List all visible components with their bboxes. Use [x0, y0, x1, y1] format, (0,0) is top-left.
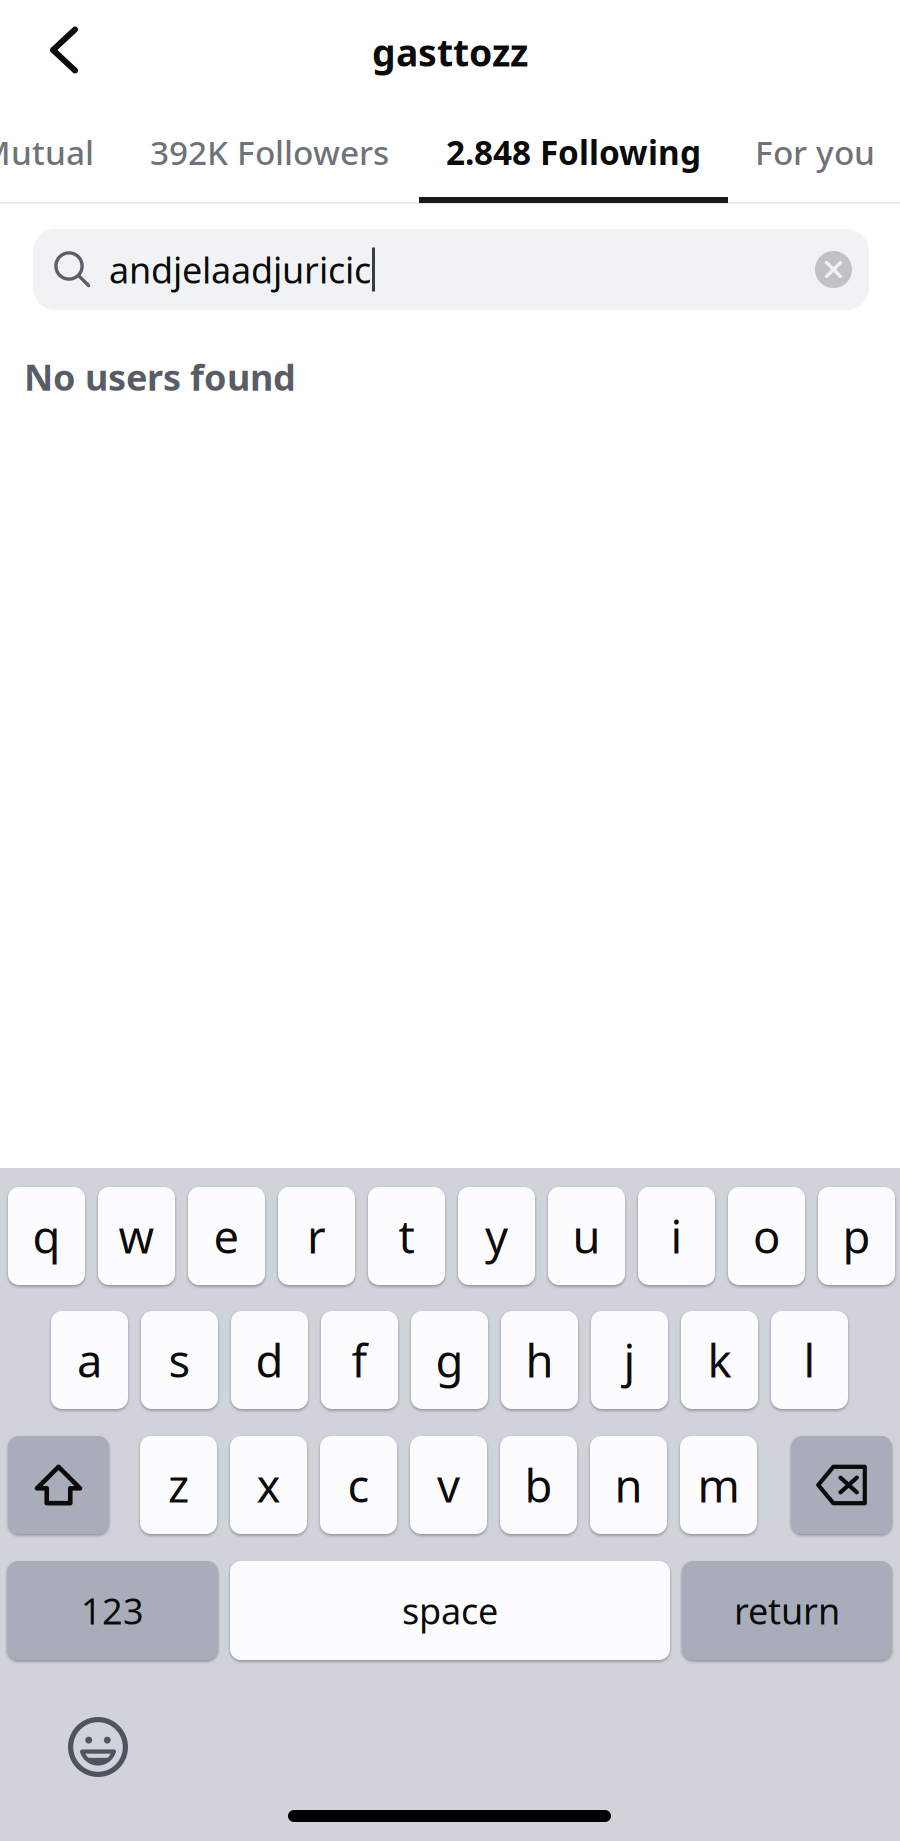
staticText: 392K Followers	[150, 130, 389, 174]
staticText: z	[168, 1455, 189, 1515]
button[interactable]: a	[51, 1311, 128, 1409]
staticText: c	[347, 1455, 369, 1515]
button[interactable]: Shift	[8, 1436, 109, 1534]
staticText: b	[524, 1455, 552, 1515]
button[interactable]: z	[140, 1436, 217, 1534]
staticText: a	[77, 1330, 102, 1390]
button[interactable]: u	[548, 1187, 625, 1285]
staticText: t	[398, 1206, 414, 1266]
button[interactable]: f	[321, 1311, 398, 1409]
staticText: e	[213, 1206, 239, 1266]
staticText: i	[670, 1206, 682, 1266]
staticText: gasttozz	[372, 27, 528, 77]
button[interactable]: t	[368, 1187, 445, 1285]
staticText: x	[256, 1455, 280, 1515]
button[interactable]: return	[682, 1561, 892, 1660]
button[interactable]: Back	[8, 0, 120, 100]
button[interactable]: Emoji	[48, 1707, 148, 1787]
button[interactable]: h	[501, 1311, 578, 1409]
button[interactable]: b	[500, 1436, 577, 1534]
staticText: 123	[81, 1587, 144, 1634]
staticText: m	[697, 1455, 739, 1515]
button[interactable]: e	[188, 1187, 265, 1285]
staticText: space	[402, 1587, 498, 1634]
button[interactable]: q	[8, 1187, 85, 1285]
staticText: d	[255, 1330, 283, 1390]
staticText: Mutual	[0, 130, 94, 174]
button[interactable]: n	[590, 1436, 667, 1534]
staticText: For you	[755, 130, 875, 174]
staticText: 2.848 Following	[446, 130, 701, 174]
button[interactable]: 392K Followers	[150, 112, 389, 192]
button[interactable]: p	[818, 1187, 895, 1285]
button[interactable]: j	[591, 1311, 668, 1409]
button[interactable]: y	[458, 1187, 535, 1285]
button[interactable]: i	[638, 1187, 715, 1285]
button[interactable]: Mutual	[0, 112, 94, 192]
staticText: h	[525, 1330, 553, 1390]
staticText: r	[307, 1206, 326, 1266]
staticText: j	[623, 1330, 635, 1390]
button[interactable]: v	[410, 1436, 487, 1534]
button[interactable]: o	[728, 1187, 805, 1285]
staticText: n	[614, 1455, 642, 1515]
button[interactable]: x	[230, 1436, 307, 1534]
button[interactable]: m	[680, 1436, 757, 1534]
staticText: p	[842, 1206, 870, 1266]
button[interactable]: 123	[7, 1561, 218, 1660]
button[interactable]: d	[231, 1311, 308, 1409]
staticText: o	[753, 1206, 780, 1266]
staticText: k	[707, 1330, 731, 1390]
button[interactable]: space	[230, 1561, 670, 1660]
staticText: return	[734, 1587, 840, 1634]
staticText: No users found	[24, 353, 296, 401]
staticText: w	[118, 1206, 154, 1266]
button[interactable]: Delete	[791, 1436, 892, 1534]
button[interactable]: r	[278, 1187, 355, 1285]
staticText: u	[572, 1206, 600, 1266]
button[interactable]: For you	[755, 112, 875, 192]
staticText: andjelaadjuricic	[109, 246, 371, 293]
button[interactable]: s	[141, 1311, 218, 1409]
staticText: g	[435, 1330, 463, 1390]
button[interactable]: k	[681, 1311, 758, 1409]
button[interactable]: l	[771, 1311, 848, 1409]
button[interactable]: g	[411, 1311, 488, 1409]
staticText: f	[351, 1330, 367, 1390]
button[interactable]: c	[320, 1436, 397, 1534]
staticText: l	[803, 1330, 815, 1390]
staticText: q	[32, 1206, 60, 1266]
button[interactable]: w	[98, 1187, 175, 1285]
staticText: y	[485, 1206, 508, 1266]
staticText: s	[168, 1330, 190, 1390]
button[interactable]: 2.848 Following	[419, 112, 728, 198]
staticText: v	[437, 1455, 460, 1515]
